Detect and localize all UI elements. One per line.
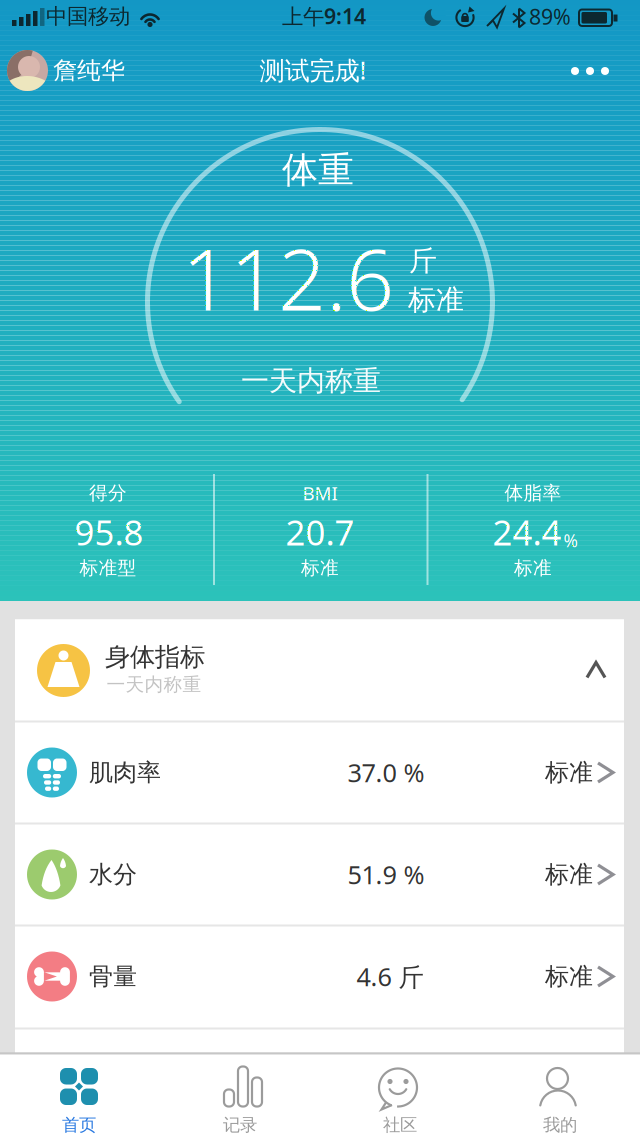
- staticText: 37.0 %: [347, 756, 424, 789]
- button[interactable]: 詹纯华: [7, 50, 125, 91]
- staticText: 标准: [408, 283, 464, 317]
- button[interactable]: 社区: [320, 1054, 480, 1138]
- staticText: 体脂率: [504, 481, 561, 504]
- button[interactable]: 记录: [160, 1054, 320, 1138]
- staticText: 得分: [89, 481, 127, 504]
- staticText: 95.8: [74, 509, 143, 555]
- staticText: 肌肉率: [89, 758, 161, 787]
- button[interactable]: 骨量: [15, 925, 624, 1027]
- staticText: 詹纯华: [53, 56, 125, 85]
- button[interactable]: 我的: [480, 1054, 640, 1138]
- staticText: 89%: [529, 2, 571, 31]
- staticText: 标准: [545, 962, 593, 991]
- staticText: 骨量: [89, 962, 137, 991]
- staticText: 中国移动: [46, 3, 130, 30]
- button[interactable]: More: [560, 51, 620, 91]
- staticText: 测试完成!: [259, 53, 366, 87]
- button[interactable]: 身体指标: [15, 619, 624, 721]
- staticText: 标准: [545, 860, 593, 889]
- staticText: 112.6: [182, 222, 394, 334]
- staticText: 社区: [383, 1114, 417, 1136]
- staticText: 记录: [223, 1114, 257, 1136]
- staticText: 一天内称重: [106, 673, 201, 696]
- staticText: 20.7: [285, 509, 354, 555]
- staticText: 身体指标: [105, 641, 205, 672]
- staticText: 体重: [282, 148, 354, 192]
- staticText: 斤: [409, 244, 437, 278]
- staticText: 标准: [545, 758, 593, 787]
- staticText: 51.9 %: [347, 858, 424, 891]
- staticText: 上午9:14: [282, 2, 366, 30]
- button[interactable]: 肌肉率: [15, 721, 624, 823]
- button[interactable]: 首页: [0, 1054, 160, 1138]
- staticText: 24.4: [492, 509, 561, 555]
- staticText: 标准: [301, 556, 339, 579]
- staticText: 我的: [543, 1114, 577, 1136]
- staticText: 标准: [514, 556, 552, 579]
- staticText: 水分: [89, 860, 137, 889]
- staticText: 一天内称重: [241, 364, 381, 398]
- staticText: BMI: [302, 481, 337, 505]
- staticText: %: [563, 529, 577, 552]
- staticText: 4.6 斤: [356, 960, 423, 993]
- button[interactable]: 水分: [15, 823, 624, 925]
- staticText: 标准型: [79, 556, 136, 579]
- staticText: 首页: [62, 1114, 96, 1136]
